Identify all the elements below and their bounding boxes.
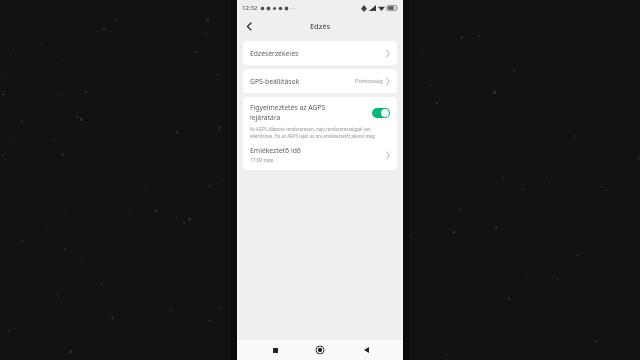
staticText: 17:00 napi — [250, 157, 274, 164]
button[interactable]: AGPS warning toggle — [372, 108, 390, 118]
staticText: Edzés — [310, 21, 331, 31]
button[interactable]: GPS-beállítások — [243, 69, 397, 93]
button[interactable]: Edzésérzékelés — [243, 41, 397, 65]
staticText: Edzésérzékelés — [250, 49, 299, 58]
staticText: GPS-beállítások — [250, 77, 300, 86]
staticText: Emlékeztető idő — [250, 146, 301, 155]
button[interactable]: Recents — [267, 342, 283, 358]
staticText: Figyelmeztetés az AGPS — [250, 103, 326, 112]
staticText: ellenőrizve. Ha az AGPS lejár, az óra em… — [250, 133, 375, 139]
staticText: Pontosság — [355, 77, 383, 85]
staticText: 12:32 — [242, 4, 258, 12]
button[interactable]: Home — [312, 342, 328, 358]
staticText: lejáratára — [250, 113, 281, 122]
button[interactable]: Figyelmeztetés az AGPS — [243, 97, 397, 126]
staticText: ··· — [291, 4, 296, 12]
button[interactable]: Back — [241, 18, 257, 34]
button[interactable]: Emlékeztető idő — [243, 144, 397, 170]
button[interactable]: Back — [358, 342, 374, 358]
staticText: Az AGPS állapota rendszeresen, napi rend… — [250, 126, 371, 132]
